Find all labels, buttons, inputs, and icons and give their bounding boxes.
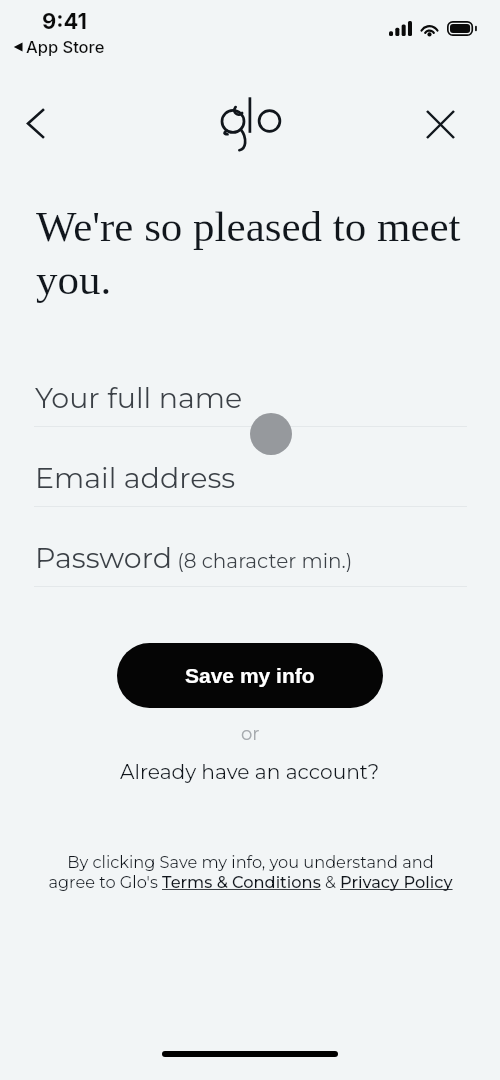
button[interactable] [0,452,500,510]
staticText: We're so pleased to meet you. [36,203,474,303]
button[interactable] [0,532,500,590]
button[interactable]: Back [11,99,59,147]
staticText: or [241,723,260,745]
staticText: App Store [26,37,105,57]
staticText: Email address [35,460,236,495]
button[interactable]: Save my info [117,643,383,708]
staticText: agree to Glo's Terms & Conditions & Priv… [48,872,453,892]
button[interactable]: Close [416,100,464,148]
staticText: By clicking Save my info, you understand… [67,852,434,872]
staticText: Password (8 character min.) [35,540,353,575]
button[interactable]: Already have an account? [114,755,386,788]
button[interactable] [0,372,500,430]
staticText: Already have an account? [120,759,380,784]
staticText: Save my info [185,664,315,687]
staticText: Your full name [35,380,243,415]
staticText: 9:41 [42,8,88,35]
